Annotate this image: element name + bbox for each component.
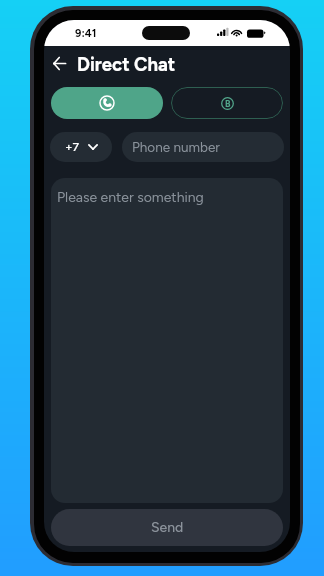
staticText: Please enter something (57, 189, 204, 206)
staticText: Direct Chat (77, 53, 176, 75)
button[interactable]: +7 (50, 132, 112, 162)
staticText: Send (151, 519, 184, 536)
button[interactable]: Phone number (122, 132, 284, 162)
staticText: B (225, 98, 231, 109)
button[interactable]: Send (51, 509, 283, 546)
staticText: Phone number (132, 139, 220, 155)
button[interactable]: Business account (171, 87, 283, 119)
staticText: +7 (65, 140, 80, 154)
button[interactable]: Back (46, 50, 72, 76)
button[interactable]: Please enter something (51, 178, 283, 503)
staticText: 9:41 (75, 27, 97, 40)
button[interactable]: WhatsApp (51, 87, 163, 119)
